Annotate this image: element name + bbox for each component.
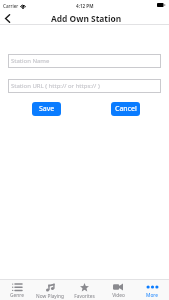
staticText: Station URL ( http:// or https:// ) [11, 82, 100, 90]
button[interactable]: Save [32, 102, 61, 116]
button[interactable]: Cancel [111, 102, 140, 116]
staticText: Save [39, 104, 55, 114]
staticText: Genre [10, 292, 24, 299]
button[interactable]: More [135, 280, 169, 300]
staticText: 4:12 PM [76, 3, 94, 9]
staticText: Video [112, 292, 125, 299]
button[interactable]: Now Playing [33, 280, 67, 300]
staticText: Favorites [74, 293, 95, 300]
button[interactable]: Genre [0, 280, 33, 300]
button[interactable]: Station URL ( http:// or https:// ) [8, 79, 161, 93]
button[interactable]: Station Name [8, 54, 161, 68]
staticText: Add Own Station [51, 13, 122, 24]
staticText: Now Playing [36, 293, 64, 300]
staticText: More [146, 292, 158, 299]
button[interactable]: Video [101, 280, 135, 300]
staticText: Station Name [11, 57, 50, 65]
staticText: Carrier [3, 3, 19, 9]
button[interactable]: Back [0, 11, 20, 25]
button[interactable]: Favorites [67, 280, 101, 300]
staticText: Cancel [115, 104, 137, 114]
